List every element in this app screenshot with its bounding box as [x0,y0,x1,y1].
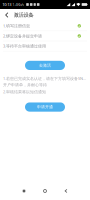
button[interactable]: 2.绑定设备并提交申请 [0,31,90,41]
button[interactable]: Home [34,184,55,198]
staticText: 申请开通 [37,105,53,109]
button[interactable]: Back [55,184,76,198]
staticText: 2.绑定设备并提交申请 [3,33,42,39]
staticText: 激活设备 [13,12,33,18]
button[interactable]: 去激活 [25,61,65,70]
button[interactable]: 1.填写注册信息 [0,21,90,31]
staticText: 2.审核结果将以短信通知 [3,89,46,94]
staticText: 1.填写注册信息 [3,23,30,28]
staticText: 去激活 [39,63,51,68]
button[interactable]: Recents [13,184,34,198]
staticText: 1.若您已完成实名认证，请在下方填写设备SN号后提交 [3,76,87,81]
button[interactable]: 申请开通 [25,102,65,112]
staticText: 10:13 [2,2,11,7]
button[interactable]: Back [0,9,13,21]
staticText: 开户申请单，并耐心等待 [3,82,47,87]
button[interactable]: 3.等待平台审核通过使用 [0,41,90,51]
staticText: 1.4Kb/s [11,2,24,7]
staticText: 3.等待平台审核通过使用 [3,43,46,49]
